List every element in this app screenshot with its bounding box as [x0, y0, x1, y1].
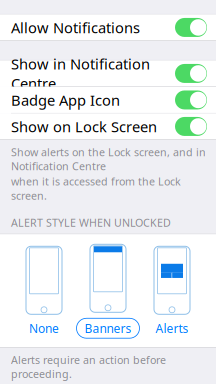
staticText: Show alerts on the Lock screen, and in N…	[11, 145, 206, 173]
staticText: Banners	[84, 320, 131, 336]
staticText: Show in Notification Centre	[11, 54, 150, 93]
staticText: Alerts	[155, 320, 188, 336]
button[interactable]: None	[12, 245, 76, 336]
button[interactable]: Show on Lock Screen	[0, 113, 216, 139]
staticText: Allow Notifications	[11, 18, 140, 37]
staticText: Alerts require an action before proceedi…	[11, 353, 166, 381]
staticText: Show on Lock Screen	[11, 117, 157, 136]
staticText: when it is accessed from the Lock screen…	[11, 174, 181, 203]
button[interactable]: Show in Notification Centre	[0, 60, 216, 87]
button[interactable]: Allow Notifications	[0, 14, 216, 40]
staticText: None	[29, 320, 59, 336]
button[interactable]: Alerts	[140, 245, 204, 336]
button[interactable]: Badge App Icon	[0, 87, 216, 113]
staticText: Badge App Icon	[11, 90, 120, 110]
button[interactable]: Banners	[76, 243, 140, 338]
staticText: ALERT STYLE WHEN UNLOCKED	[11, 216, 171, 230]
